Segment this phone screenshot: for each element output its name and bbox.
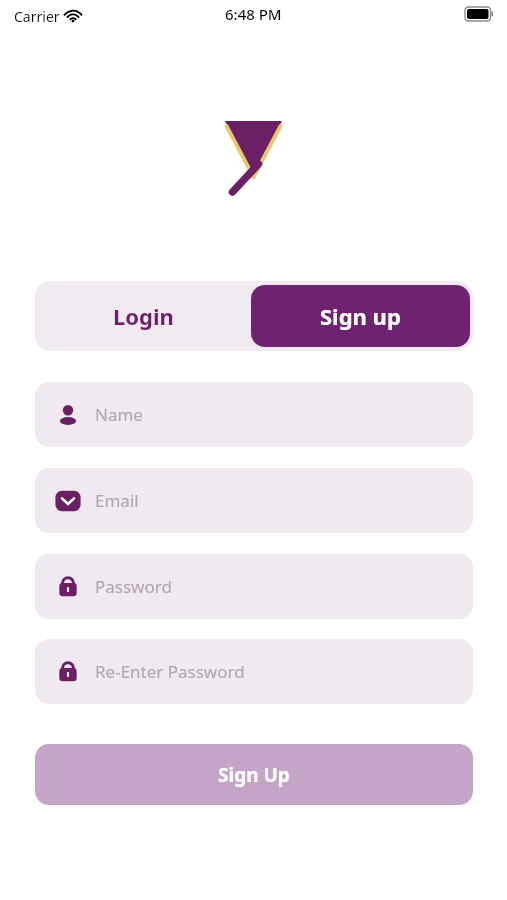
staticText: Login (113, 301, 174, 331)
button[interactable]: Email (35, 468, 473, 533)
button[interactable]: Login (35, 281, 251, 351)
staticText: Sign up (320, 301, 401, 331)
staticText: 6:48 PM (225, 4, 282, 24)
button[interactable]: Name (35, 382, 473, 447)
staticText: Re-Enter Password (95, 660, 245, 683)
other: Password (53, 572, 83, 602)
staticText: Carrier (14, 7, 60, 26)
staticText: Email (95, 489, 139, 512)
other: Re-Enter Password (53, 657, 83, 687)
staticText: Name (95, 403, 143, 426)
button[interactable]: Re-Enter Password (35, 639, 473, 704)
other: Email (53, 486, 83, 516)
button[interactable]: Sign Up (35, 744, 473, 805)
staticText: Sign Up (218, 762, 290, 788)
button[interactable]: Password (35, 554, 473, 619)
button[interactable]: Sign up (251, 285, 470, 347)
other: Name (53, 400, 83, 430)
staticText: Password (95, 575, 172, 598)
